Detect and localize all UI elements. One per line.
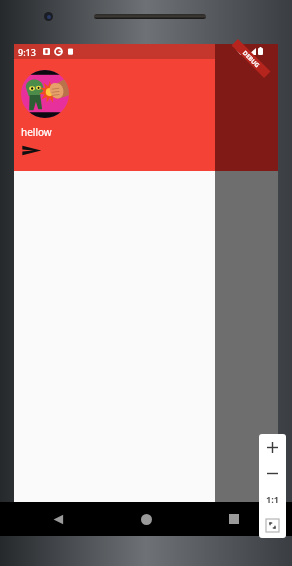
button[interactable]: Fit to screen [259, 512, 286, 538]
button[interactable]: Home [102, 502, 190, 536]
button[interactable]: Send [21, 143, 43, 158]
button[interactable]: Recent apps [190, 502, 278, 536]
button[interactable]: Back [14, 502, 102, 536]
staticText: DEBUG [241, 49, 261, 69]
staticText: 1:1 [266, 493, 279, 505]
button[interactable]: Zoom out [259, 460, 286, 486]
button[interactable]: Actual size [259, 486, 286, 512]
staticText: hellow [21, 125, 52, 139]
staticText: 9:13 [18, 46, 36, 58]
button[interactable]: Zoom in [259, 434, 286, 460]
button[interactable]: Profile picture [21, 70, 69, 118]
